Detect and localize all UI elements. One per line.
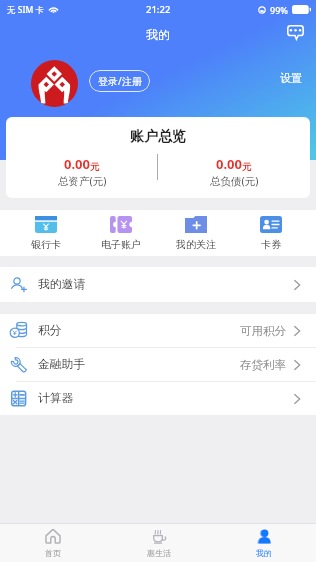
staticText: 无 SIM 卡 [7, 4, 44, 16]
button[interactable]: 首页 [0, 524, 106, 562]
staticText: 银行卡 [31, 238, 61, 251]
button[interactable]: 电子账户 [83, 210, 158, 256]
staticText: 存贷利率 [240, 358, 286, 372]
staticText: 0.00 [216, 155, 242, 173]
button[interactable]: 金融助手 [0, 348, 316, 381]
staticText: 惠生活 [147, 548, 171, 558]
button[interactable]: 登录/注册 [89, 70, 150, 92]
staticText: 21:22 [146, 3, 171, 16]
staticText: 0.00 [64, 155, 90, 173]
staticText: 金融助手 [38, 357, 86, 372]
button[interactable]: 计算器 [0, 382, 316, 415]
staticText: 总负债(元) [210, 174, 259, 188]
staticText: 我的关注 [176, 238, 216, 251]
staticText: 我的 [256, 548, 272, 558]
staticText: 我的邀请 [38, 277, 86, 292]
button[interactable]: Messages [280, 19, 310, 46]
staticText: 计算器 [38, 391, 74, 406]
staticText: 元 [242, 161, 252, 173]
staticText: 总资产(元) [58, 174, 107, 188]
staticText: 设置 [280, 71, 302, 85]
button[interactable]: 积分 [0, 314, 316, 347]
button[interactable]: 我的邀请 [0, 267, 316, 302]
staticText: 首页 [45, 548, 61, 558]
button[interactable]: 卡券 [233, 210, 308, 256]
staticText: 卡券 [261, 238, 281, 251]
staticText: 我的 [146, 27, 170, 42]
button[interactable]: 银行卡 [8, 210, 83, 256]
staticText: 99% [270, 4, 288, 16]
staticText: 可用积分 [240, 324, 286, 338]
button[interactable]: 惠生活 [106, 524, 211, 562]
staticText: 账户总览 [6, 128, 310, 146]
button[interactable]: 设置 [274, 67, 308, 89]
staticText: 元 [90, 161, 100, 173]
button[interactable]: 我的关注 [158, 210, 233, 256]
button[interactable]: 我的 [211, 524, 316, 562]
button[interactable] [31, 60, 78, 107]
staticText: 电子账户 [101, 238, 141, 251]
staticText: 积分 [38, 323, 62, 338]
staticText: 登录/注册 [98, 74, 142, 88]
